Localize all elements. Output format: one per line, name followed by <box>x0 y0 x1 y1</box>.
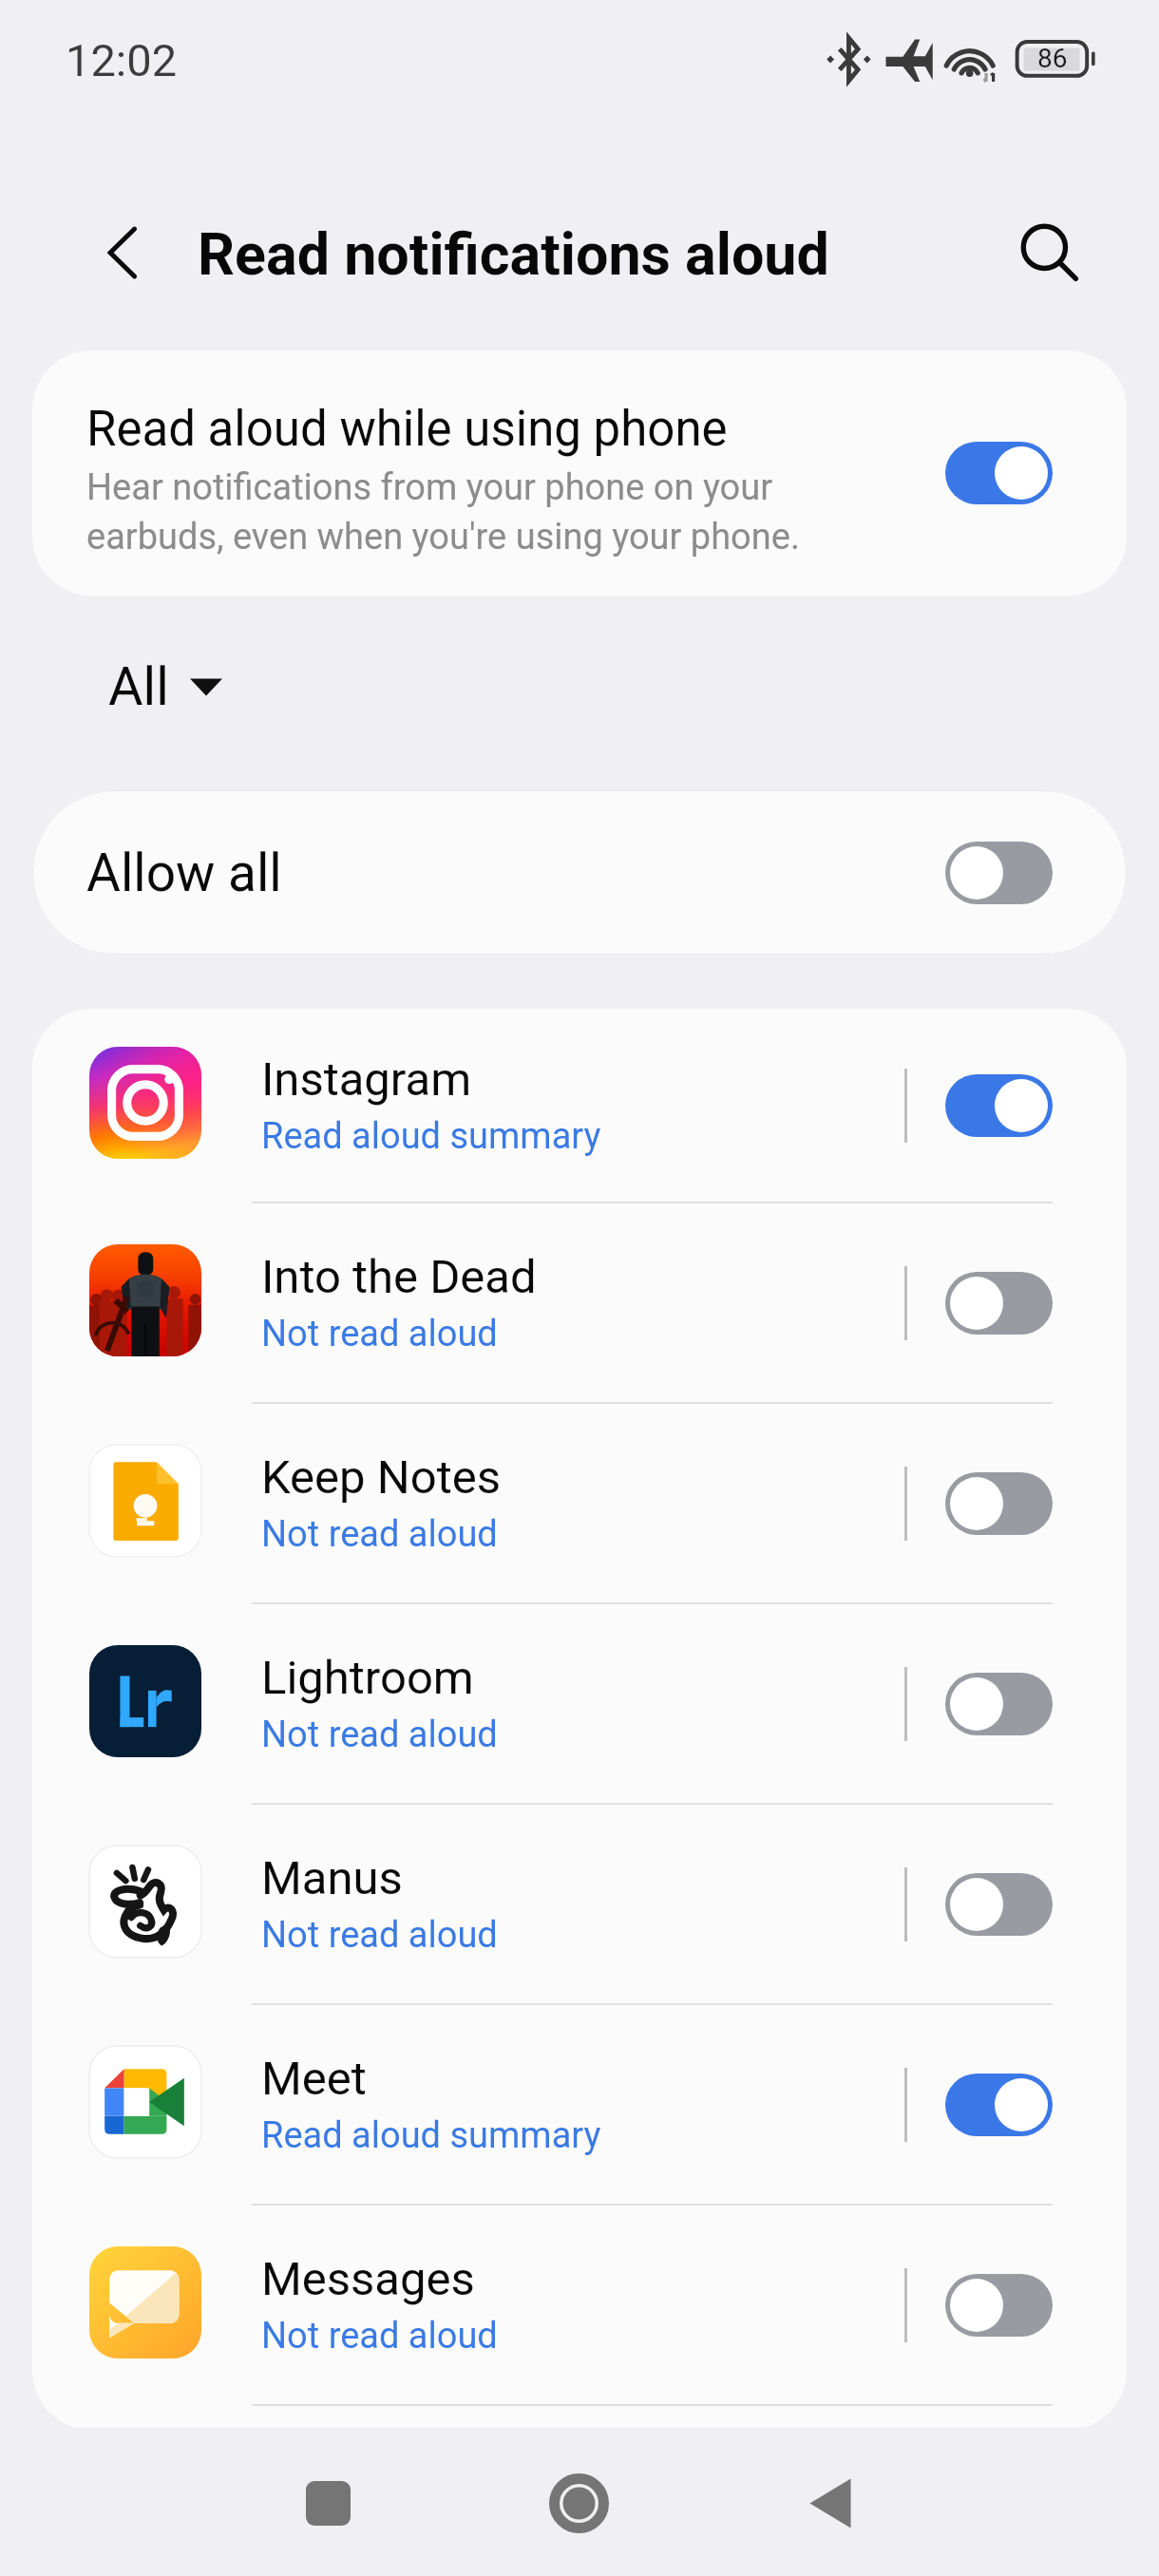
button[interactable]: Back <box>778 2452 882 2555</box>
button[interactable]: Allow all <box>32 790 1127 955</box>
button[interactable]: Off <box>945 1472 1053 1535</box>
button[interactable]: Off <box>945 2274 1053 2337</box>
staticText: Not read aloud <box>261 1513 498 1556</box>
button[interactable]: Lightroom <box>32 1604 1127 1803</box>
button[interactable]: Recent apps <box>276 2452 380 2555</box>
button[interactable]: Off <box>945 1673 1053 1735</box>
button[interactable]: Off <box>945 842 1053 904</box>
button[interactable]: Into the Dead <box>32 1203 1127 1402</box>
button[interactable]: Search <box>1009 214 1089 294</box>
staticText: Read notifications aloud <box>198 220 829 288</box>
staticText: Not read aloud <box>261 1313 498 1355</box>
staticText: 86 <box>1037 43 1068 74</box>
button[interactable]: Back <box>87 217 160 289</box>
button[interactable]: Off <box>945 1873 1053 1936</box>
staticText: Hear notifications from your phone on yo… <box>86 466 837 558</box>
staticText: Messages <box>261 2252 475 2306</box>
staticText: Not read aloud <box>261 2315 498 2358</box>
staticText: Allow all <box>86 843 942 903</box>
staticText: Not read aloud <box>261 1914 498 1957</box>
button[interactable]: On <box>945 2074 1053 2136</box>
staticText: 12:02 <box>66 34 178 86</box>
button[interactable]: On <box>945 442 1053 504</box>
staticText: Into the Dead <box>261 1250 537 1304</box>
button[interactable]: Keep Notes <box>32 1404 1127 1602</box>
button[interactable]: Manus <box>32 1805 1127 2003</box>
staticText: All <box>108 655 169 718</box>
button[interactable]: Instagram <box>32 1009 1127 1202</box>
button[interactable]: All <box>108 655 222 718</box>
staticText: Read aloud summary <box>261 1115 601 1158</box>
button[interactable]: On <box>945 1074 1053 1137</box>
staticText: Manus <box>261 1851 403 1905</box>
button[interactable]: Off <box>945 1272 1053 1335</box>
staticText: Read aloud summary <box>261 2114 601 2157</box>
button[interactable]: Messages <box>32 2206 1127 2404</box>
staticText: Read aloud while using phone <box>86 401 728 458</box>
staticText: Instagram <box>261 1052 472 1107</box>
button[interactable]: Meet <box>32 2005 1127 2204</box>
staticText: Not read aloud <box>261 1714 498 1756</box>
staticText: Meet <box>261 2052 367 2106</box>
button[interactable]: Home <box>527 2452 631 2555</box>
button[interactable]: Read aloud while using phone <box>32 350 1127 596</box>
staticText: Lightroom <box>261 1651 474 1705</box>
staticText: Keep Notes <box>261 1450 501 1505</box>
